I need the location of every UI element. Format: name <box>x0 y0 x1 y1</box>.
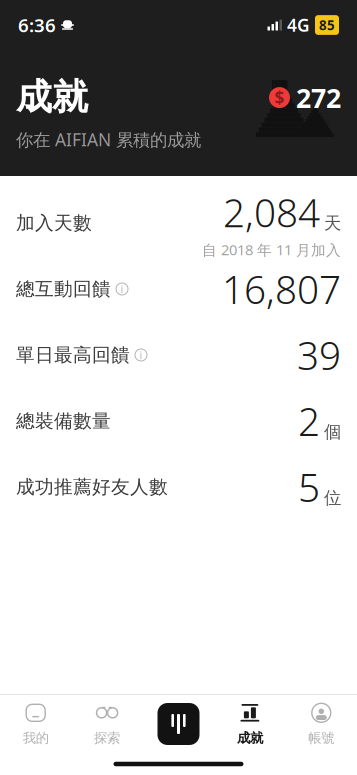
staticText: 加入天數 <box>16 211 92 234</box>
staticText: 4G <box>287 13 310 36</box>
staticText: 天 <box>324 213 341 234</box>
staticText: 成就 <box>16 75 88 119</box>
staticText: 你在 AIFIAN 累積的成就 <box>16 128 201 151</box>
button[interactable]: 加入天數 <box>0 190 357 256</box>
staticText: 探索 <box>94 730 120 746</box>
staticText: 自 2018 年 11 月加入 <box>202 240 341 259</box>
staticText: 85 <box>319 16 335 34</box>
staticText: 成就 <box>237 730 263 746</box>
button[interactable]: 探索 <box>71 695 143 753</box>
staticText: 總互動回饋 <box>16 277 111 300</box>
staticText: 個 <box>324 421 341 443</box>
staticText: 我的 <box>23 730 49 746</box>
staticText: 位 <box>324 487 341 509</box>
staticText: i <box>120 282 123 296</box>
staticText: 16,807 <box>222 263 341 315</box>
staticText: 272 <box>296 80 341 115</box>
button[interactable]: 單日最高回饋 <box>0 322 357 388</box>
staticText: 6:36 <box>18 13 56 37</box>
button[interactable]: 成功推薦好友人數 <box>0 454 357 520</box>
staticText: i <box>139 348 142 362</box>
staticText: 2,084 <box>223 187 320 238</box>
button[interactable]: 成就 <box>214 695 286 753</box>
button[interactable]: 新增 <box>143 695 214 753</box>
staticText: 總裝備數量 <box>16 409 111 432</box>
staticText: 39 <box>297 329 341 381</box>
button[interactable]: 總裝備數量 <box>0 388 357 454</box>
staticText: 2 <box>298 395 320 447</box>
staticText: 成功推薦好友人數 <box>16 475 168 498</box>
staticText: 5 <box>298 461 320 513</box>
staticText: 帳號 <box>308 730 334 746</box>
button[interactable]: 總互動回饋 <box>0 256 357 322</box>
staticText: $ <box>274 86 284 109</box>
button[interactable]: 帳號 <box>286 695 357 753</box>
staticText: 單日最高回饋 <box>16 343 130 366</box>
button[interactable]: 我的 <box>0 695 71 753</box>
